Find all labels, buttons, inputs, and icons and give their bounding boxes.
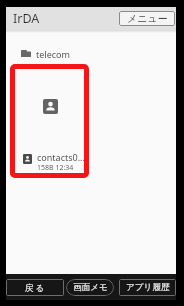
button[interactable]: 戻 る [6, 279, 64, 296]
button[interactable]: メニュー [119, 11, 175, 26]
button[interactable]: アプリ履歴 [119, 279, 176, 296]
button[interactable]: telecom [6, 45, 176, 62]
button[interactable]: 画面メモ [66, 279, 114, 296]
staticText: contacts0... [37, 151, 85, 163]
staticText: メニュー [127, 12, 168, 25]
staticText: アプリ履歴 [126, 282, 170, 293]
staticText: 戻 る [25, 282, 45, 294]
button[interactable]: contacts0... [10, 64, 89, 178]
staticText: telecom [36, 48, 70, 60]
staticText: 画面メモ [73, 282, 108, 293]
staticText: 158B 12:34 [37, 163, 74, 173]
staticText: IrDA [13, 10, 40, 27]
